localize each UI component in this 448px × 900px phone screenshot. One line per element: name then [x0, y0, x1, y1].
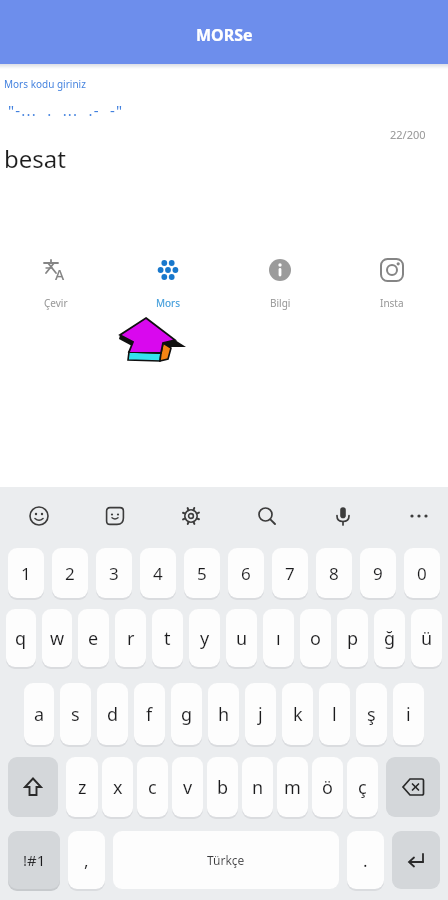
button[interactable]: 6 [228, 548, 264, 598]
button[interactable] [102, 503, 128, 529]
button[interactable]: d [97, 683, 128, 745]
button[interactable] [178, 503, 204, 529]
staticText: "-... . ... .- -" [8, 100, 124, 120]
button[interactable]: 2 [52, 548, 88, 598]
button[interactable]: ü [411, 609, 442, 667]
staticText: 5 [197, 562, 207, 585]
button[interactable]: j [245, 683, 276, 745]
staticText: k [293, 702, 303, 727]
staticText: r [127, 626, 135, 651]
staticText: l [332, 702, 337, 727]
button[interactable]: z [66, 757, 98, 817]
button[interactable]: , [68, 831, 105, 889]
button[interactable]: . [347, 831, 384, 889]
button[interactable]: ş [356, 683, 387, 745]
button[interactable]: ı [263, 609, 294, 667]
staticText: s [71, 702, 80, 727]
button[interactable]: Insta [336, 256, 448, 310]
button[interactable] [254, 503, 280, 529]
button[interactable]: l [319, 683, 350, 745]
staticText: i [406, 702, 411, 727]
button[interactable]: t [152, 609, 183, 667]
staticText: 6 [241, 562, 251, 585]
staticText: Bilgi [270, 296, 291, 310]
staticText: o [310, 626, 321, 651]
staticText: b [217, 775, 229, 800]
staticText: 0 [417, 562, 427, 585]
button[interactable]: v [172, 757, 203, 817]
button[interactable]: ç [347, 757, 378, 817]
staticText: 4 [153, 562, 163, 585]
button[interactable] [26, 503, 52, 529]
button[interactable]: a [24, 683, 54, 745]
staticText: ü [421, 626, 433, 651]
staticText: 2 [65, 562, 75, 585]
button[interactable]: Bilgi [224, 256, 336, 310]
button[interactable] [392, 831, 440, 889]
staticText: w [50, 626, 65, 651]
button[interactable]: k [282, 683, 313, 745]
button[interactable]: s [60, 683, 91, 745]
button[interactable]: Türkçe [113, 831, 339, 889]
button[interactable]: 3 [96, 548, 132, 598]
staticText: 7 [285, 562, 295, 585]
button[interactable]: c [137, 757, 168, 817]
staticText: ö [322, 775, 333, 800]
button[interactable]: g [171, 683, 202, 745]
button[interactable]: 7 [272, 548, 308, 598]
button[interactable]: y [189, 609, 220, 667]
staticText: 8 [329, 562, 339, 585]
staticText: e [88, 626, 99, 651]
button[interactable]: 8 [316, 548, 352, 598]
staticText: c [148, 775, 157, 800]
staticText: A [55, 265, 65, 284]
button[interactable]: ğ [374, 609, 405, 667]
button[interactable] [330, 503, 356, 529]
staticText: d [107, 702, 119, 727]
button[interactable] [8, 757, 58, 817]
button[interactable]: x [102, 757, 133, 817]
button[interactable]: !#1 [8, 831, 60, 889]
button[interactable]: 9 [360, 548, 396, 598]
staticText: g [181, 702, 193, 727]
button[interactable]: f [134, 683, 165, 745]
button[interactable]: w [42, 609, 72, 667]
button[interactable]: e [78, 609, 109, 667]
button[interactable] [406, 503, 432, 529]
staticText: f [146, 702, 153, 727]
button[interactable]: 1 [8, 548, 44, 598]
button[interactable]: m [277, 757, 308, 817]
staticText: Çevir [44, 296, 68, 310]
button[interactable]: r [115, 609, 146, 667]
button[interactable]: 0 [404, 548, 440, 598]
staticText: q [15, 626, 27, 651]
staticText: , [84, 849, 89, 872]
staticText: a [34, 702, 45, 727]
staticText: p [347, 626, 359, 651]
staticText: Mors [156, 296, 181, 310]
staticText: 9 [373, 562, 383, 585]
staticText: y [200, 626, 210, 651]
staticText: 1 [21, 562, 31, 585]
staticText: j [258, 702, 263, 727]
button[interactable]: ö [312, 757, 343, 817]
button[interactable]: i [393, 683, 424, 745]
staticText: u [236, 626, 248, 651]
staticText: z [78, 775, 87, 800]
button[interactable]: 5 [184, 548, 220, 598]
button[interactable]: p [337, 609, 368, 667]
button[interactable]: Mors [112, 256, 224, 310]
button[interactable]: u [226, 609, 257, 667]
button[interactable]: 4 [140, 548, 176, 598]
button[interactable]: o [300, 609, 331, 667]
staticText: !#1 [23, 850, 46, 870]
button[interactable]: q [6, 609, 36, 667]
staticText: ç [358, 775, 367, 800]
button[interactable]: h [208, 683, 239, 745]
staticText: Türkçe [207, 852, 245, 868]
button[interactable] [386, 757, 440, 817]
button[interactable]: b [207, 757, 238, 817]
staticText: MORSe [196, 24, 253, 46]
button[interactable]: A [0, 256, 112, 310]
button[interactable]: n [242, 757, 273, 817]
